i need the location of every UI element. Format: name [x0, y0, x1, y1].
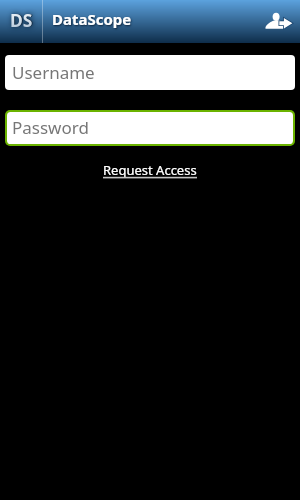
button[interactable]: Sign in: [264, 0, 296, 43]
staticText: Request Access: [103, 161, 197, 179]
button[interactable]: Username: [5, 55, 295, 90]
button[interactable]: DataScope logo: [0, 0, 42, 43]
staticText: DS: [10, 8, 33, 32]
staticText: Username: [12, 61, 95, 84]
staticText: DataScope: [52, 9, 132, 29]
button[interactable]: Password: [7, 112, 293, 144]
staticText: DS: [11, 8, 34, 32]
staticText: Password: [12, 116, 89, 139]
button[interactable]: Request Access: [97, 158, 203, 180]
